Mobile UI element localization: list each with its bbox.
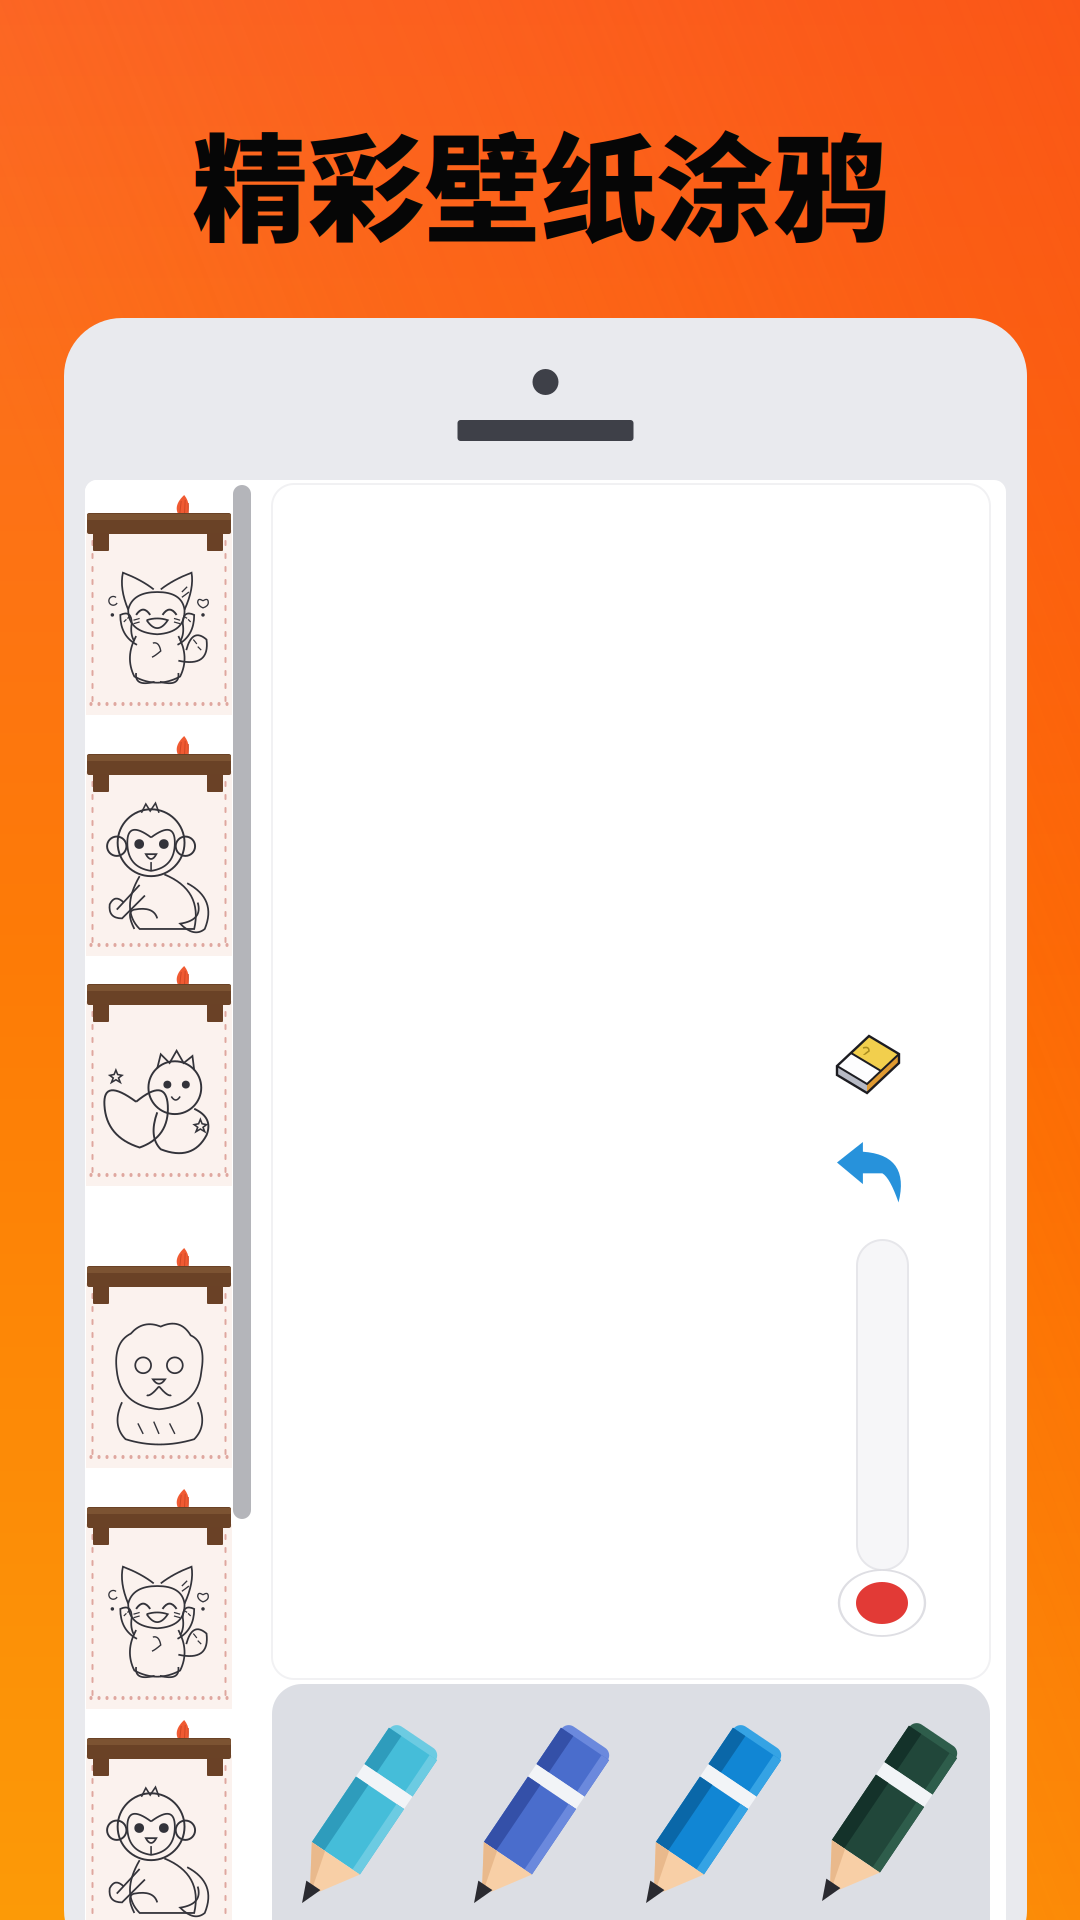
button[interactable]: Brush size xyxy=(839,1560,925,1646)
button[interactable]: Colouring page xyxy=(85,966,233,1198)
button[interactable]: Colouring page xyxy=(85,736,233,968)
button[interactable]: Colouring page xyxy=(85,495,233,727)
button[interactable]: Colouring page xyxy=(85,1720,233,1920)
staticText: 精彩壁纸涂鸦 xyxy=(192,97,888,265)
button[interactable]: Blue pencil xyxy=(448,1718,618,1920)
button[interactable]: Colouring page xyxy=(85,1489,233,1721)
button[interactable]: Eraser xyxy=(831,1030,903,1096)
button[interactable]: Light blue pencil xyxy=(276,1718,446,1920)
button[interactable]: Undo xyxy=(833,1136,909,1202)
button[interactable]: Dark green pencil xyxy=(796,1716,966,1920)
button[interactable]: Dark blue pencil xyxy=(620,1718,790,1920)
button[interactable]: Colouring page xyxy=(85,1248,233,1480)
